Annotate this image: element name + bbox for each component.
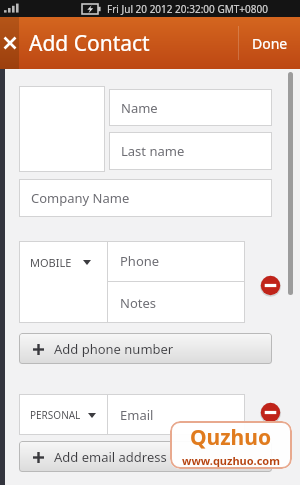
- staticText: Notes: [120, 294, 156, 312]
- staticText: www.quzhuo.com: [182, 453, 280, 468]
- button[interactable]: Company Name: [19, 179, 272, 217]
- staticText: Name: [121, 99, 158, 117]
- button[interactable]: Add phone number: [19, 333, 272, 364]
- button[interactable]: Notes: [108, 282, 245, 323]
- button[interactable]: MOBILE: [19, 241, 107, 323]
- staticText: Email: [120, 406, 154, 424]
- button[interactable]: Add email address: [19, 441, 272, 472]
- button[interactable]: Remove: [259, 401, 281, 423]
- staticText: Add email address: [54, 448, 167, 466]
- staticText: Add phone number: [54, 340, 174, 358]
- staticText: Quzhuo: [190, 423, 272, 452]
- staticText: MOBILE: [30, 255, 72, 270]
- button[interactable]: Phone: [108, 241, 245, 281]
- button[interactable]: Close: [0, 17, 19, 69]
- staticText: Done: [252, 34, 288, 53]
- button[interactable]: Email: [108, 394, 245, 435]
- staticText: Last name: [121, 142, 185, 160]
- staticText: Company Name: [31, 189, 130, 207]
- button[interactable]: Name: [109, 89, 272, 126]
- staticText: PERSONAL: [30, 408, 81, 422]
- button[interactable]: PERSONAL: [19, 394, 107, 435]
- staticText: Add Contact: [29, 29, 150, 58]
- button[interactable]: Done: [240, 17, 300, 69]
- staticText: Fri Jul 20 2012 20:32:00 GMT+0800: [107, 2, 268, 16]
- button[interactable]: [19, 86, 105, 172]
- button[interactable]: Last name: [109, 132, 272, 170]
- button[interactable]: Remove: [259, 274, 281, 296]
- staticText: Phone: [120, 252, 160, 270]
